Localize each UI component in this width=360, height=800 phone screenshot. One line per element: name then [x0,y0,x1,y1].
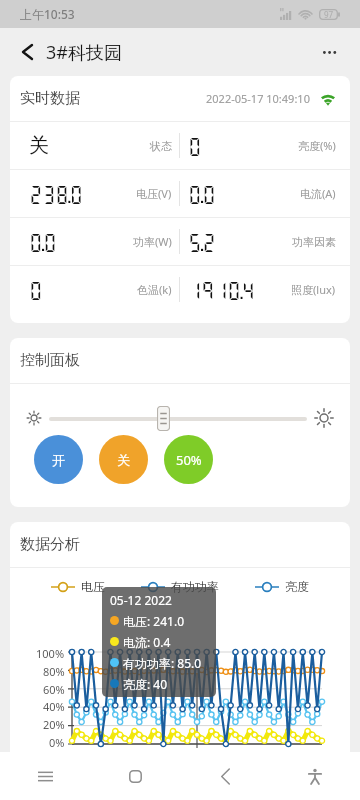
staticText: 有功功率 [171,579,219,594]
button[interactable]: 50% [164,435,213,484]
staticText: 60% [43,682,65,697]
staticText: 238.0 [29,183,83,205]
staticText: 有功功率: 85.0 [123,655,202,671]
staticText: 电流(A) [300,186,336,201]
staticText: 照度(lux) [291,282,336,297]
staticText: 0 [188,135,202,157]
staticText: 5.2 [188,231,216,253]
staticText: 100% [36,646,65,661]
staticText: 关 [117,452,130,468]
button[interactable]: Accessibility [270,752,360,800]
staticText: 0% [49,735,65,750]
button[interactable]: Home [90,752,180,800]
staticText: 0.0 [29,231,57,253]
staticText: 亮度(%) [298,138,336,153]
button[interactable]: Back [0,28,46,76]
staticText: 05-12 2022 [110,592,172,608]
button[interactable]: 关 [99,435,148,484]
staticText: 电流: 0.4 [123,634,171,650]
staticText: 2022-05-17 10:49:10 [206,91,310,106]
staticText: 0 [29,279,43,301]
staticText: 开 [52,452,65,468]
staticText: 40% [43,699,65,714]
staticText: 色温(k) [137,282,172,297]
staticText: 数据分析 [20,535,80,554]
staticText: 关 [29,133,49,158]
button[interactable]: Recent apps [0,752,90,800]
staticText: 实时数据 [20,89,80,108]
staticText: 亮度 [285,579,309,594]
staticText: 上午10:53 [20,6,75,22]
staticText: 亮度: 40 [123,676,168,692]
staticText: 20% [43,717,65,732]
staticText: 97 [324,9,334,20]
staticText: 控制面板 [20,351,80,370]
staticText: 功率(W) [133,234,172,249]
staticText: 电压: 241.0 [123,613,185,629]
staticText: 0.0 [188,183,216,205]
staticText: 80% [43,664,65,679]
button[interactable]: 开 [34,435,83,484]
staticText: 电压 [81,579,105,594]
staticText: 50% [176,451,202,469]
staticText: 状态 [150,139,172,153]
staticText: 3#科技园 [46,40,122,65]
button[interactable]: Back [180,752,270,800]
staticText: 电压(V) [136,186,172,201]
staticText: 功率因素 [292,235,336,249]
staticText: 1910.4 [188,279,255,301]
button[interactable]: More options [312,28,360,76]
button[interactable]: Brightness slider [157,406,170,431]
